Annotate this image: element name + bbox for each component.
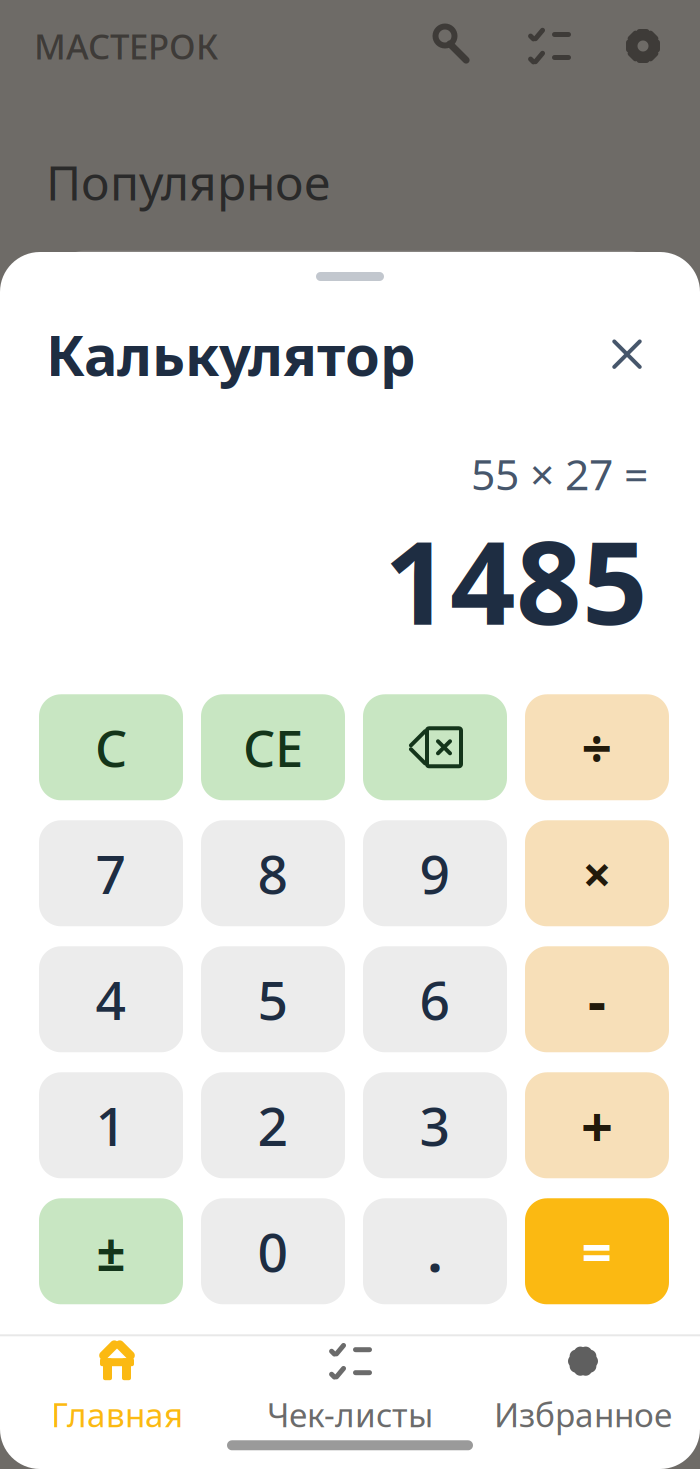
- button[interactable]: +: [525, 1072, 669, 1178]
- button[interactable]: Настройки: [620, 23, 666, 69]
- staticText: 55 × 27 =: [471, 445, 648, 502]
- button[interactable]: C: [39, 694, 183, 800]
- button[interactable]: Главная: [0, 1336, 233, 1440]
- staticText: МАСТЕРОК: [34, 23, 218, 69]
- button[interactable]: Чек-листы: [526, 23, 572, 69]
- staticText: 1485: [384, 504, 648, 656]
- staticText: +: [581, 1088, 613, 1162]
- button[interactable]: Инструменты: [430, 23, 476, 69]
- button[interactable]: CE: [201, 694, 345, 800]
- button[interactable]: 3: [363, 1072, 507, 1178]
- staticText: CE: [243, 714, 303, 781]
- staticText: 6: [419, 964, 450, 1035]
- staticText: 9: [419, 838, 450, 909]
- button[interactable]: 0: [201, 1198, 345, 1304]
- button[interactable]: 5: [201, 946, 345, 1052]
- button[interactable]: 1: [39, 1072, 183, 1178]
- button[interactable]: -: [525, 946, 669, 1052]
- staticText: ×: [582, 840, 611, 907]
- staticText: 1: [95, 1090, 126, 1161]
- staticText: 8: [257, 838, 288, 909]
- staticText: 3: [419, 1090, 450, 1161]
- staticText: 4: [95, 964, 126, 1035]
- button[interactable]: ÷: [525, 694, 669, 800]
- staticText: C: [95, 714, 127, 781]
- staticText: Популярное: [46, 150, 330, 214]
- button[interactable]: Чек-листы: [233, 1336, 466, 1440]
- button[interactable]: Избранное: [466, 1336, 699, 1440]
- button[interactable]: 8: [201, 820, 345, 926]
- button[interactable]: ±: [39, 1198, 183, 1304]
- staticText: Чек-листы: [267, 1392, 433, 1436]
- staticText: Калькулятор: [46, 317, 416, 391]
- staticText: Главная: [51, 1392, 183, 1436]
- button[interactable]: ×: [525, 820, 669, 926]
- button[interactable]: 2: [201, 1072, 345, 1178]
- staticText: -: [588, 962, 606, 1036]
- staticText: =: [581, 1216, 612, 1287]
- button[interactable]: 7: [39, 820, 183, 926]
- staticText: Избранное: [494, 1392, 672, 1436]
- button[interactable]: 9: [363, 820, 507, 926]
- staticText: ±: [96, 1218, 125, 1285]
- button[interactable]: Закрыть: [600, 327, 654, 381]
- button[interactable]: 6: [363, 946, 507, 1052]
- staticText: 5: [257, 964, 288, 1035]
- staticText: 7: [95, 838, 126, 909]
- button[interactable]: =: [525, 1198, 669, 1304]
- staticText: 2: [257, 1090, 288, 1161]
- button[interactable]: 4: [39, 946, 183, 1052]
- staticText: ÷: [581, 712, 612, 783]
- staticText: 0: [257, 1216, 288, 1287]
- button[interactable]: Удалить: [363, 694, 507, 800]
- staticText: .: [427, 1216, 442, 1287]
- button[interactable]: .: [363, 1198, 507, 1304]
